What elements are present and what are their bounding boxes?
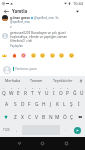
staticText: A bbox=[5, 101, 9, 108]
button[interactable]: Backspace bbox=[75, 111, 85, 123]
button[interactable]: 9 bbox=[57, 85, 64, 98]
button[interactable]: 0 bbox=[64, 85, 71, 98]
button[interactable]: Ç bbox=[68, 111, 75, 123]
button[interactable]: Z bbox=[11, 111, 19, 123]
staticText: g:/nae gxsso bbox=[10, 16, 30, 20]
staticText: X bbox=[21, 114, 24, 121]
staticText: 7 bbox=[46, 87, 48, 90]
button[interactable]: Teşekkürler bbox=[48, 76, 77, 85]
button[interactable]: A bbox=[3, 98, 11, 111]
button[interactable]: 4 bbox=[22, 85, 29, 98]
staticText: S bbox=[14, 101, 17, 108]
staticText: hoşlandıkça, ellerde ve yaptığım zaman bbox=[10, 35, 68, 39]
staticText: 3 bbox=[18, 87, 20, 90]
button[interactable]: More options bbox=[74, 8, 81, 15]
staticText: geniusee0203 Buradayım ve çok güzel bbox=[10, 31, 66, 35]
staticText: Ü bbox=[80, 90, 84, 97]
button[interactable]: Emoji bbox=[50, 53, 55, 58]
staticText: @qxr8ed_mia 5s bbox=[34, 16, 59, 20]
button[interactable]: F bbox=[26, 98, 33, 111]
staticText: Q bbox=[2, 90, 6, 97]
staticText: H bbox=[42, 101, 46, 108]
staticText: R bbox=[24, 90, 27, 97]
staticText: 10:44 bbox=[73, 1, 83, 6]
button[interactable]: S bbox=[11, 98, 19, 111]
button[interactable]: J bbox=[47, 98, 54, 111]
staticText: I bbox=[53, 90, 55, 97]
button[interactable]: Emoji bbox=[2, 53, 7, 58]
staticText: 5 bbox=[32, 87, 34, 90]
button[interactable]: 5 bbox=[29, 85, 36, 98]
staticText: N bbox=[49, 114, 53, 121]
button[interactable]: L bbox=[61, 98, 68, 111]
staticText: C bbox=[28, 114, 32, 121]
button[interactable]: Emoji bbox=[21, 53, 26, 58]
button[interactable]: Emoji bbox=[12, 53, 17, 58]
staticText: Ş bbox=[70, 101, 73, 108]
staticText: L bbox=[63, 101, 66, 108]
staticText: 6 bbox=[39, 87, 41, 90]
button[interactable]: X bbox=[19, 111, 26, 123]
button[interactable]: Voice input bbox=[77, 76, 85, 85]
button[interactable]: Ş bbox=[68, 98, 75, 111]
staticText: , bbox=[16, 127, 18, 132]
button[interactable]: Emoji bbox=[59, 53, 64, 58]
button[interactable]: Emoji bbox=[40, 53, 45, 58]
staticText: P bbox=[66, 90, 69, 97]
staticText: Yanıtla bbox=[12, 8, 28, 14]
button[interactable]: B bbox=[40, 111, 47, 123]
button[interactable]: 8 bbox=[50, 85, 57, 98]
staticText: 0 bbox=[67, 87, 69, 90]
staticText: Ç bbox=[70, 114, 74, 121]
button[interactable]: Shift bbox=[0, 111, 11, 123]
staticText: . bbox=[65, 127, 67, 132]
button[interactable]: Emoji bbox=[69, 53, 74, 58]
button[interactable]: Ö bbox=[61, 111, 68, 123]
button[interactable]: C bbox=[26, 111, 33, 123]
button[interactable]: Merhaba bbox=[0, 76, 25, 85]
button[interactable]: D bbox=[19, 98, 26, 111]
staticText: T bbox=[31, 90, 34, 97]
button[interactable]: 2 bbox=[8, 85, 15, 98]
button[interactable]: G bbox=[33, 98, 40, 111]
staticText: 4 bbox=[25, 87, 27, 90]
staticText: W bbox=[9, 90, 14, 97]
staticText: 8 bbox=[53, 87, 55, 90]
button[interactable]: K bbox=[54, 98, 61, 111]
button[interactable]: 3 bbox=[15, 85, 22, 98]
button[interactable]: Ğ bbox=[71, 85, 78, 98]
staticText: U bbox=[45, 90, 49, 97]
button[interactable]: Back bbox=[15, 139, 24, 148]
button[interactable]: N bbox=[47, 111, 54, 123]
staticText: K bbox=[56, 101, 59, 108]
staticText: Ö bbox=[63, 114, 67, 121]
button[interactable]: Ü bbox=[78, 85, 85, 98]
button[interactable]: Send bbox=[70, 125, 85, 135]
staticText: M bbox=[55, 114, 60, 121]
staticText: J bbox=[50, 101, 52, 108]
button[interactable]: M bbox=[54, 111, 61, 123]
staticText: Y bbox=[38, 90, 41, 97]
staticText: Ğ bbox=[73, 90, 77, 97]
button[interactable]: ?123 bbox=[0, 125, 12, 135]
button[interactable]: Recents bbox=[62, 139, 71, 148]
button[interactable]: Tamam bbox=[25, 76, 48, 85]
button[interactable]: , bbox=[12, 125, 21, 135]
staticText: ?123 bbox=[3, 128, 10, 132]
button[interactable]: Back bbox=[2, 7, 10, 15]
button[interactable]: 6 bbox=[36, 85, 43, 98]
staticText: Z bbox=[14, 114, 17, 121]
button[interactable]: 7 bbox=[43, 85, 50, 98]
button[interactable]: 1 bbox=[0, 85, 8, 98]
staticText: @qxr8ed_mia bbox=[10, 20, 30, 24]
staticText: v bbox=[10, 25, 12, 29]
button[interactable]: V bbox=[33, 111, 40, 123]
button[interactable]: Emoji bbox=[31, 53, 36, 58]
button[interactable]: Home bbox=[38, 139, 47, 148]
button[interactable]: İ bbox=[75, 98, 82, 111]
button[interactable]: H bbox=[40, 98, 47, 111]
staticText: Teşekkürler bbox=[53, 78, 73, 83]
staticText: O bbox=[59, 90, 63, 97]
